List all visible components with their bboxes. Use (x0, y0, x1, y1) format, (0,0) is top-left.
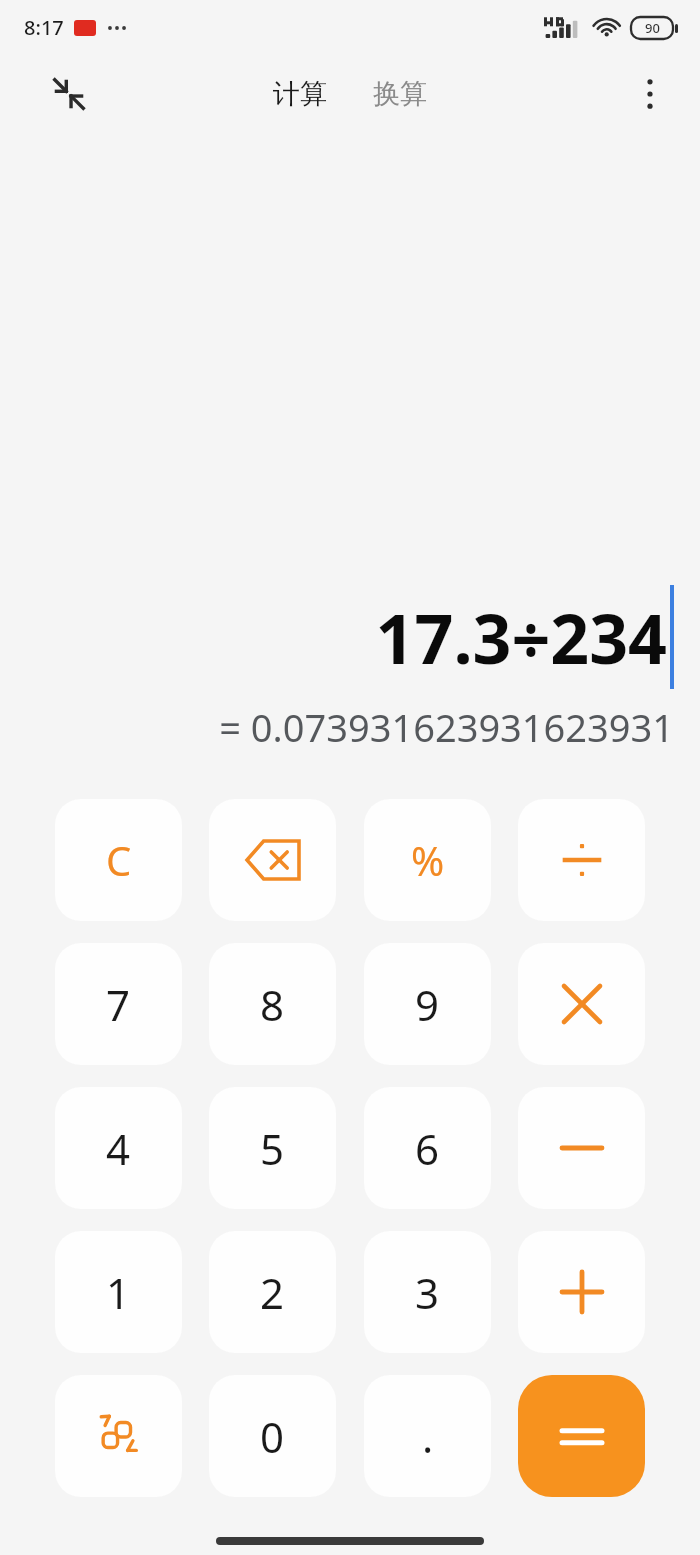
staticText: 17.3÷234 (375, 591, 667, 684)
button[interactable]: 9 (364, 943, 491, 1065)
button[interactable]: Divide (518, 799, 645, 921)
button[interactable]: Equals (518, 1375, 645, 1497)
staticText: 计算 (273, 77, 327, 111)
staticText: 7 (106, 976, 131, 1033)
staticText: 8:17 (24, 14, 64, 41)
button[interactable]: % (364, 799, 491, 921)
staticText: 3 (415, 1264, 440, 1321)
button[interactable]: 计算 (267, 71, 333, 117)
staticText: 1 (106, 1264, 131, 1321)
button[interactable]: Scientific mode (55, 1375, 182, 1497)
button[interactable]: Plus (518, 1231, 645, 1353)
staticText: 5 (260, 1120, 285, 1177)
staticText: 换算 (373, 77, 427, 111)
button[interactable]: 7 (55, 943, 182, 1065)
button[interactable]: 5 (209, 1087, 336, 1209)
button[interactable]: C (55, 799, 182, 921)
staticText: 4 (106, 1120, 131, 1177)
button[interactable]: Multiply (518, 943, 645, 1065)
button[interactable]: Minus (518, 1087, 645, 1209)
staticText: 6 (415, 1120, 440, 1177)
button[interactable]: 2 (209, 1231, 336, 1353)
button[interactable]: Collapse (40, 65, 98, 123)
button[interactable]: 6 (364, 1087, 491, 1209)
staticText: 90 (645, 19, 660, 37)
staticText: . (422, 1408, 434, 1465)
button[interactable]: Backspace (209, 799, 336, 921)
staticText: 2 (260, 1264, 285, 1321)
staticText: = 0.073931623931623931 (28, 701, 674, 753)
button[interactable]: 8 (209, 943, 336, 1065)
button[interactable]: 3 (364, 1231, 491, 1353)
button[interactable]: 1 (55, 1231, 182, 1353)
staticText: % (411, 833, 445, 887)
button[interactable]: More options (624, 68, 676, 120)
staticText: 0 (260, 1408, 285, 1465)
button[interactable]: . (364, 1375, 491, 1497)
staticText: C (106, 833, 132, 887)
button[interactable]: 4 (55, 1087, 182, 1209)
staticText: 9 (415, 976, 440, 1033)
staticText: 8 (260, 976, 285, 1033)
button[interactable]: 换算 (367, 71, 433, 117)
button[interactable]: 0 (209, 1375, 336, 1497)
